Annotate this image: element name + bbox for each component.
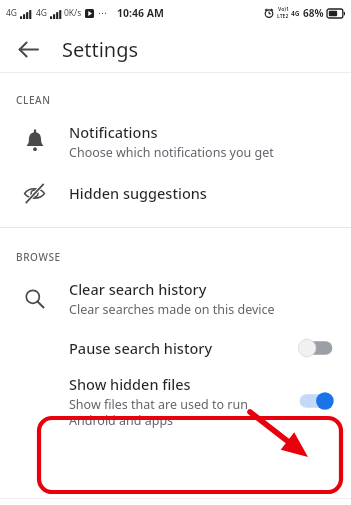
- button[interactable]: Show hidden files: [296, 390, 336, 412]
- staticText: CLEAN: [16, 93, 51, 107]
- button[interactable]: Clear search history: [0, 270, 351, 326]
- button[interactable]: Hidden suggestions: [0, 169, 351, 217]
- staticText: Clear searches made on this device: [69, 301, 275, 318]
- staticText: Settings: [62, 36, 139, 63]
- staticText: Hidden suggestions: [69, 183, 207, 203]
- button[interactable]: Notifications: [0, 113, 351, 169]
- staticText: LTE2: [277, 13, 289, 20]
- staticText: 4G: [6, 7, 18, 19]
- staticText: Pause search history: [69, 338, 213, 358]
- staticText: Show hidden files: [69, 374, 191, 394]
- staticText: Notifications: [69, 122, 158, 142]
- button[interactable]: Back: [8, 29, 48, 69]
- staticText: Clear search history: [69, 279, 207, 299]
- staticText: ⋯: [98, 8, 107, 18]
- staticText: 68%: [303, 6, 324, 20]
- staticText: 0K/s: [64, 7, 82, 19]
- staticText: Show files that are used to run Android …: [69, 396, 248, 428]
- staticText: 4G: [36, 7, 48, 19]
- button[interactable]: Show hidden files: [0, 370, 351, 432]
- staticText: BROWSE: [16, 250, 61, 264]
- button[interactable]: Pause search history: [296, 337, 336, 359]
- button[interactable]: Pause search history: [0, 326, 351, 370]
- staticText: Vo)1: [278, 6, 289, 13]
- staticText: 10:46 AM: [117, 6, 164, 20]
- staticText: 4G: [291, 9, 300, 18]
- staticText: Choose which notifications you get: [69, 144, 274, 161]
